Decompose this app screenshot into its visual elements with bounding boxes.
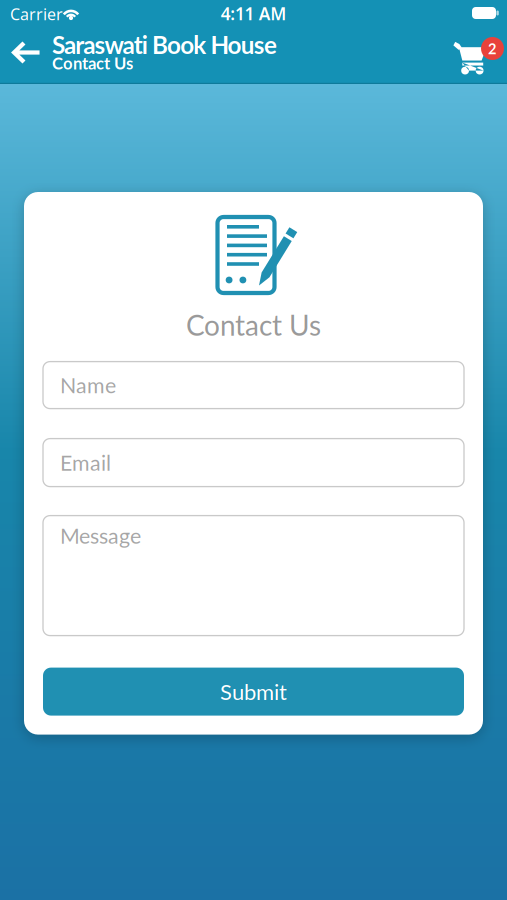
staticText: Submit bbox=[220, 678, 287, 705]
staticText: Saraswati Book House bbox=[52, 30, 277, 59]
staticText: 4:11 AM bbox=[221, 2, 286, 25]
staticText: Carrier bbox=[10, 3, 63, 25]
button[interactable]: Back bbox=[3, 31, 48, 74]
button[interactable]: Cart bbox=[438, 30, 498, 78]
staticText: Message bbox=[60, 523, 141, 548]
button[interactable]: Submit bbox=[43, 668, 464, 716]
button[interactable]: Name bbox=[43, 362, 464, 409]
button[interactable]: Message bbox=[43, 516, 464, 636]
staticText: 2 bbox=[488, 40, 497, 57]
staticText: Name bbox=[60, 372, 116, 398]
staticText: Email bbox=[60, 450, 111, 475]
button[interactable]: Email bbox=[43, 439, 464, 487]
staticText: Contact Us bbox=[52, 53, 133, 73]
staticText: Contact Us bbox=[186, 308, 321, 342]
